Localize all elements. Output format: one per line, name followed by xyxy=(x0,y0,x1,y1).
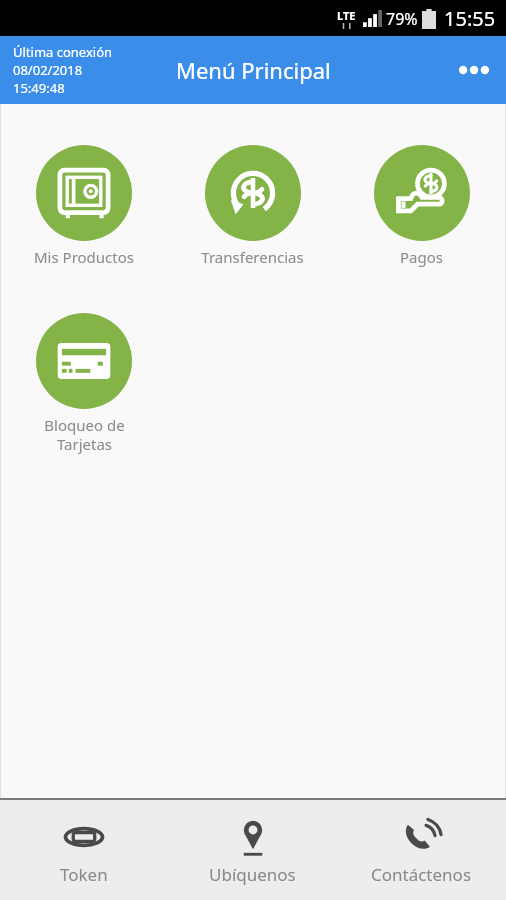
staticText: Transferencias xyxy=(201,247,304,267)
staticText: Bloqueo de Tarjetas xyxy=(44,415,125,454)
staticText: 08/02/2018 xyxy=(13,61,83,79)
staticText: Contáctenos xyxy=(371,863,472,886)
button[interactable]: Bloqueo de Tarjetas xyxy=(0,313,168,454)
staticText: Ubíquenos xyxy=(209,863,296,886)
staticText: LTE xyxy=(337,8,356,23)
staticText: Menú Principal xyxy=(176,55,331,85)
staticText: Pagos xyxy=(400,247,443,267)
staticText: 15:49:48 xyxy=(13,79,65,97)
button[interactable]: Mis Productos xyxy=(0,145,168,267)
button[interactable]: Contáctenos xyxy=(337,809,506,892)
staticText: 15:55 xyxy=(444,5,496,32)
button[interactable]: Pagos xyxy=(337,145,506,267)
staticText: Mis Productos xyxy=(34,247,134,267)
button[interactable]: Transferencias xyxy=(168,145,337,267)
button[interactable]: Token xyxy=(0,809,168,892)
button[interactable]: Ubíquenos xyxy=(168,809,337,892)
staticText: 79% xyxy=(386,8,418,30)
button[interactable]: Más opciones xyxy=(450,46,498,94)
staticText: Última conexión xyxy=(13,43,113,61)
staticText: Token xyxy=(60,863,108,886)
